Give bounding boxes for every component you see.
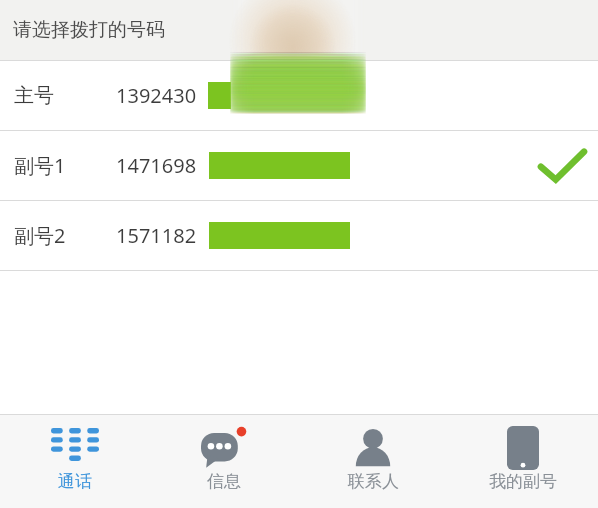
staticText: 1571182 — [116, 222, 197, 249]
button[interactable]: 联系人 — [298, 415, 448, 492]
button[interactable]: 副号1 — [0, 131, 598, 200]
staticText: 信息 — [207, 471, 241, 492]
staticText: 联系人 — [348, 471, 399, 492]
staticText: 副号1 — [14, 152, 66, 179]
staticText: 请选择拨打的号码 — [13, 18, 165, 42]
other: 联系人 — [352, 428, 394, 468]
staticText: 1392430 — [116, 82, 197, 109]
staticText: 1471698 — [116, 152, 197, 179]
button[interactable]: 我的副号 — [448, 415, 598, 492]
other: 通话 — [51, 428, 99, 468]
other: 我的副号 — [507, 426, 539, 470]
staticText: 通话 — [58, 471, 92, 492]
button[interactable]: 副号2 — [0, 201, 598, 270]
button[interactable]: 通话 — [0, 415, 149, 492]
button[interactable]: 信息 — [149, 415, 298, 492]
staticText: 我的副号 — [489, 471, 557, 492]
staticText: 主号 — [14, 83, 54, 108]
button[interactable]: 主号 — [0, 61, 598, 130]
other: 信息 — [201, 427, 247, 469]
staticText: 副号2 — [14, 222, 66, 249]
